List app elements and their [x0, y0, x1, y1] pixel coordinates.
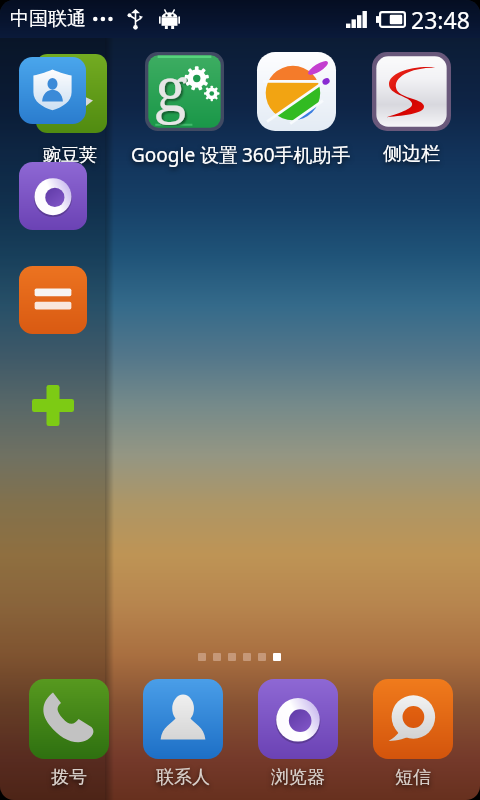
- staticText: 浏览器: [271, 766, 325, 789]
- staticText: 豌豆荚: [43, 144, 97, 167]
- button[interactable]: [19, 162, 87, 230]
- button[interactable]: [14, 52, 108, 136]
- button[interactable]: 联系人: [118, 679, 248, 759]
- button[interactable]: 360手机助手: [232, 52, 361, 131]
- button[interactable]: 短信: [348, 679, 478, 759]
- button[interactable]: 浏览器: [233, 679, 363, 759]
- button[interactable]: 拨号: [4, 679, 134, 759]
- staticText: g: [155, 47, 188, 126]
- staticText: 中国联通: [10, 7, 86, 31]
- staticText: 侧边栏: [383, 142, 440, 166]
- button[interactable]: g: [120, 52, 249, 131]
- staticText: 23:48: [411, 4, 470, 35]
- staticText: Google 设置: [131, 142, 239, 168]
- button[interactable]: 侧边栏: [347, 52, 476, 131]
- staticText: 联系人: [156, 766, 210, 789]
- staticText: 拨号: [51, 766, 87, 789]
- staticText: 360手机助手: [242, 142, 351, 168]
- button[interactable]: [19, 266, 87, 334]
- staticText: 短信: [395, 766, 431, 789]
- button[interactable]: Add shortcut: [32, 385, 74, 426]
